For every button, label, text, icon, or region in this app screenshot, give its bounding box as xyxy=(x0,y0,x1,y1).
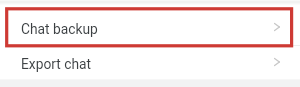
staticText: Export chat xyxy=(21,56,92,72)
button[interactable]: Export chat xyxy=(0,46,300,79)
other: Open Export chat xyxy=(270,55,284,69)
button[interactable]: Chat backup xyxy=(0,11,300,45)
staticText: Chat backup xyxy=(21,21,98,37)
other: Open Chat backup xyxy=(270,20,284,34)
